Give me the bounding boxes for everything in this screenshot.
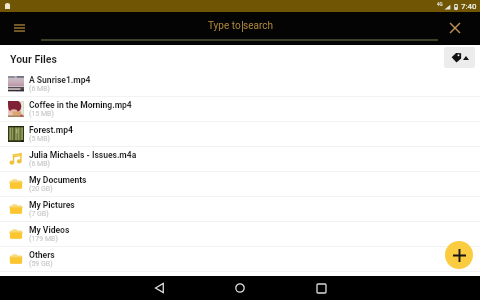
button[interactable]: A Sunrise1.mp4 [0, 72, 480, 96]
button[interactable]: My Videos [0, 222, 480, 246]
staticText: (7 GB) [29, 210, 49, 218]
button[interactable]: Add new file [445, 241, 473, 269]
button[interactable]: My Documents [0, 172, 480, 196]
staticText: 4G [437, 2, 443, 7]
staticText: Type to [208, 20, 241, 32]
button[interactable]: Forest.mp4 [0, 122, 480, 146]
staticText: Others [29, 250, 55, 260]
staticText: (6 MB) [29, 85, 50, 93]
staticText: Coffee in the Morning.mp4 [29, 100, 132, 110]
staticText: 7:40 [461, 2, 477, 11]
staticText: (5 MB) [29, 135, 50, 143]
staticText: My Documents [29, 175, 87, 185]
staticText: (15 MB) [29, 110, 54, 118]
staticText: A Sunrise1.mp4 [29, 75, 91, 85]
staticText: (179 MB) [29, 235, 58, 243]
button[interactable]: Julia Michaels - Issues.m4a [0, 147, 480, 171]
button[interactable]: Sort and filter files [444, 47, 475, 68]
staticText: Forest.mp4 [29, 125, 73, 135]
staticText: Your Files [10, 53, 57, 65]
button[interactable]: Close search [442, 15, 468, 41]
button[interactable]: Open navigation menu [6, 15, 32, 41]
button[interactable]: Coffee in the Morning.mp4 [0, 97, 480, 121]
staticText: My Pictures [29, 200, 75, 210]
staticText: (20 GB) [29, 185, 53, 193]
button[interactable]: Recent apps [309, 276, 333, 300]
button[interactable]: Home [228, 276, 252, 300]
staticText: (59 GB) [29, 260, 53, 268]
staticText: search [243, 20, 273, 32]
staticText: My Videos [29, 225, 70, 235]
staticText: Julia Michaels - Issues.m4a [29, 150, 137, 160]
staticText: (6 MB) [29, 160, 50, 168]
button[interactable]: My Pictures [0, 197, 480, 221]
button[interactable]: Back [147, 276, 171, 300]
button[interactable]: Others [0, 247, 480, 271]
